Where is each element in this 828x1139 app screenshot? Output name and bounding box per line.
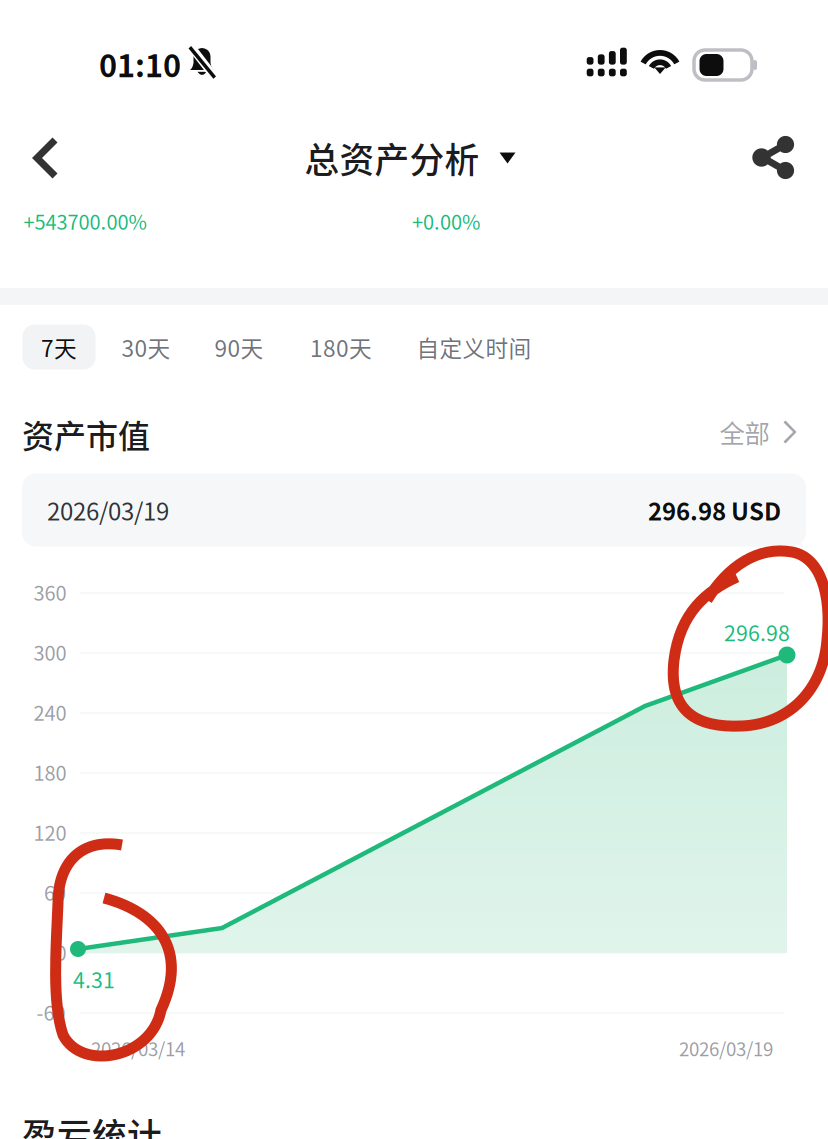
staticText: 296.98 USD [648, 493, 781, 527]
button[interactable]: 7天 [22, 324, 95, 369]
staticText: 30天 [121, 331, 170, 363]
staticText: 01:10 [99, 42, 181, 86]
button[interactable]: 全部 [711, 402, 804, 462]
button[interactable]: 总资产分析 [298, 121, 521, 195]
staticText: 90天 [214, 331, 263, 363]
staticText: 180天 [310, 331, 372, 363]
staticText: 7天 [41, 331, 77, 363]
staticText: 2026/03/19 [679, 1034, 773, 1061]
button[interactable]: Share [736, 120, 812, 196]
staticText: 120 [33, 817, 66, 846]
button[interactable]: 90天 [204, 324, 274, 369]
staticText: 2026/03/19 [47, 493, 169, 527]
staticText: 资产市值 [22, 411, 150, 457]
staticText: 240 [33, 697, 66, 726]
staticText: 0 [55, 937, 66, 966]
button[interactable]: 30天 [111, 324, 181, 369]
staticText: 盈亏统计 [22, 1109, 162, 1139]
staticText: 60 [44, 877, 66, 906]
staticText: 自定义时间 [416, 331, 531, 363]
staticText: 296.98 [724, 617, 790, 647]
button[interactable]: 自定义时间 [414, 324, 534, 369]
staticText: 4.31 [73, 964, 115, 994]
button[interactable]: Back [7, 120, 83, 196]
staticText: +543700.00% [23, 206, 146, 235]
staticText: 300 [33, 637, 66, 666]
staticText: -60 [36, 997, 65, 1026]
staticText: 2026/03/14 [91, 1034, 185, 1061]
staticText: 全部 [719, 414, 769, 450]
staticText: +0.00% [412, 206, 480, 235]
staticText: 360 [33, 577, 66, 606]
button[interactable]: 180天 [299, 324, 383, 369]
staticText: 180 [33, 757, 66, 786]
staticText: 总资产分析 [304, 133, 479, 183]
